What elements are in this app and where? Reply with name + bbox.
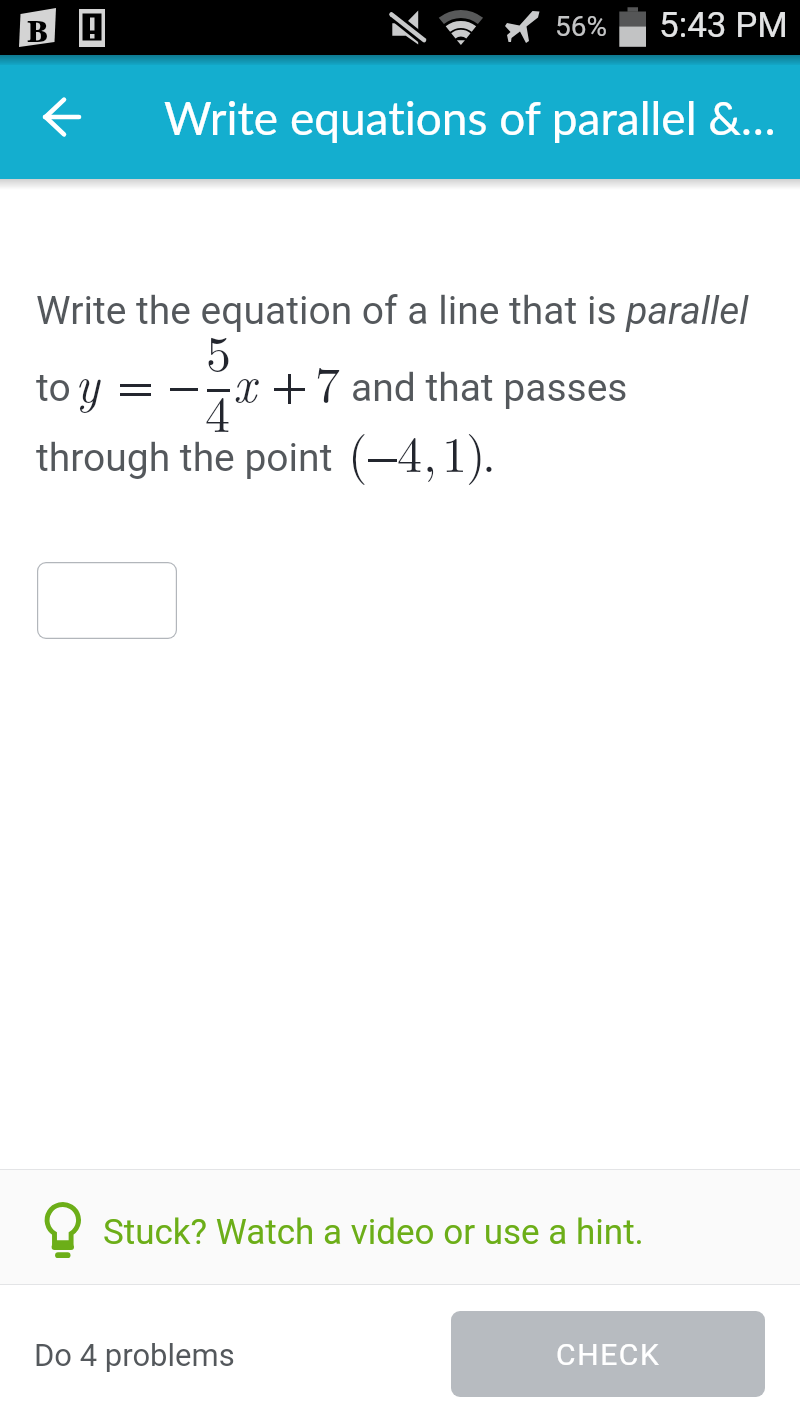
staticText: CHECK: [556, 1337, 661, 1372]
staticText: Do 4 problems: [34, 1337, 235, 1373]
staticText: Stuck? Watch a video or use a hint.: [103, 1212, 644, 1253]
staticText: x: [233, 346, 257, 417]
staticText: B: [27, 11, 48, 50]
staticText: 1: [442, 416, 467, 487]
staticText: (: [348, 416, 368, 487]
button[interactable]: [37, 562, 177, 639]
staticText: Write the equation of a line that is par…: [36, 288, 749, 334]
staticText: 56%: [555, 10, 607, 43]
staticText: ): [466, 416, 486, 487]
staticText: .: [482, 416, 496, 487]
staticText: Write equations of parallel &…: [164, 90, 776, 145]
staticText: through the point: [36, 435, 333, 481]
staticText: and that passes: [351, 365, 628, 411]
staticText: 5:43 PM: [659, 5, 788, 46]
staticText: y: [75, 346, 100, 417]
button[interactable]: Stuck? Watch a video or use a hint.: [0, 1169, 800, 1285]
staticText: 5: [206, 315, 231, 386]
staticText: to: [36, 365, 71, 411]
staticText: 4: [205, 376, 230, 447]
staticText: ,: [423, 416, 437, 487]
staticText: 4: [397, 416, 422, 487]
button[interactable]: CHECK: [451, 1311, 765, 1397]
button[interactable]: Back: [10, 65, 114, 169]
staticText: 7: [315, 346, 340, 417]
